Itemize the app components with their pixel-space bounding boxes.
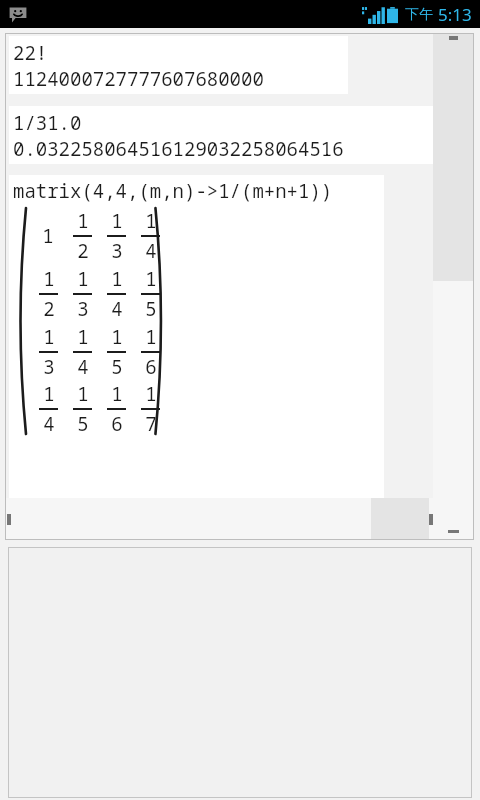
staticText: 6 — [111, 411, 123, 436]
staticText: 1 — [111, 324, 123, 350]
staticText: 2 — [77, 238, 89, 264]
button[interactable]: 22! — [9, 36, 348, 94]
staticText: 1 — [43, 381, 55, 407]
staticText: 5 — [145, 296, 157, 322]
staticText: 1 — [145, 208, 157, 234]
staticText: 1 — [111, 208, 123, 234]
button[interactable]: matrix(4,4,(m,n)->1/(m+n+1)) — [9, 175, 384, 498]
staticText: 1 — [145, 324, 157, 350]
staticText: 4 — [43, 411, 55, 436]
button[interactable]: 22! — [5, 33, 433, 498]
staticText: 3 — [77, 296, 89, 322]
staticText: 5:13 — [438, 3, 472, 26]
staticText: 1 — [77, 381, 89, 407]
staticText: 4 — [111, 296, 123, 322]
staticText: 3 — [43, 354, 55, 380]
staticText: 1 — [77, 208, 89, 234]
staticText: 1 — [77, 324, 89, 350]
staticText: 下午 — [405, 6, 433, 24]
staticText: 1 — [145, 381, 157, 407]
staticText: 1 — [43, 266, 55, 292]
staticText: 1 — [111, 381, 123, 407]
button[interactable]: Vertical scroll bar — [433, 33, 474, 540]
staticText: 0.032258064516129032258064516 — [13, 136, 344, 162]
staticText: matrix(4,4,(m,n)->1/(m+n+1)) — [13, 178, 333, 204]
staticText: 7 — [145, 411, 157, 436]
button[interactable]: Horizontal scroll bar — [5, 498, 433, 540]
staticText: 4 — [77, 354, 89, 380]
other: Messages notification — [8, 4, 28, 24]
staticText: 1 — [145, 266, 157, 292]
button[interactable] — [8, 547, 472, 798]
staticText: 1/31.0 — [13, 110, 82, 136]
button[interactable]: 1/31.0 — [9, 106, 433, 164]
staticText: 22! — [13, 40, 48, 66]
staticText: 1124000727777607680000 — [13, 66, 264, 92]
staticText: 1 — [77, 266, 89, 292]
staticText: 5 — [111, 354, 123, 380]
staticText: 5 — [77, 411, 89, 436]
staticText: 1 — [111, 266, 123, 292]
staticText: 1 — [43, 324, 55, 350]
staticText: 3 — [111, 238, 123, 264]
staticText: 2 — [43, 296, 55, 322]
staticText: 1 — [42, 223, 54, 249]
staticText: 4 — [145, 238, 157, 264]
staticText: 6 — [145, 354, 157, 380]
